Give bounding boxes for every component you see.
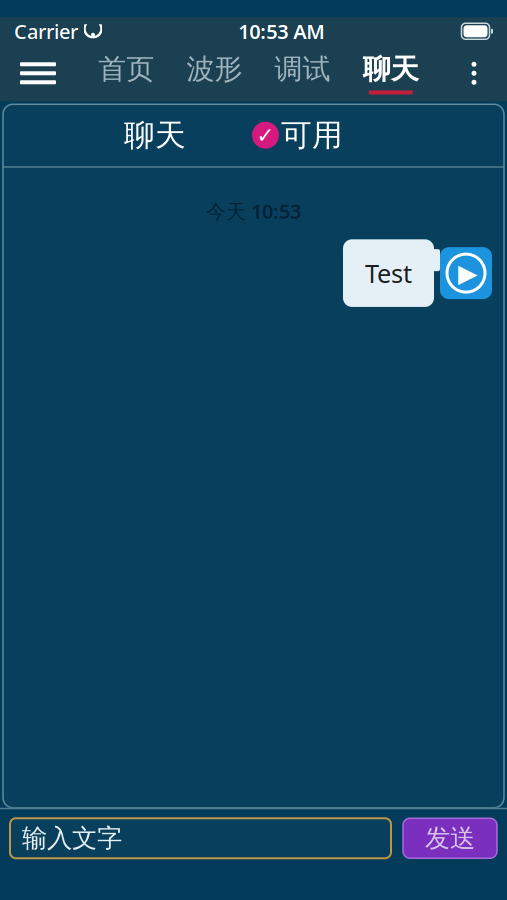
button[interactable]: 调试 <box>275 45 331 101</box>
staticText: ✓ <box>256 123 274 147</box>
button[interactable]: 输入文字 <box>10 818 391 858</box>
staticText: 聊天 <box>124 116 186 154</box>
staticText: 发送 <box>425 823 475 854</box>
button[interactable]: 首页 <box>98 45 154 101</box>
button[interactable]: 发送 <box>403 818 497 858</box>
button[interactable]: 波形 <box>186 45 242 101</box>
staticText: 今天 10:53 <box>206 198 301 224</box>
staticText: 波形 <box>186 52 242 86</box>
staticText: 输入文字 <box>22 823 122 854</box>
staticText: Carrier <box>14 18 78 45</box>
button[interactable]: 聊天 <box>363 45 419 101</box>
staticText: 调试 <box>275 52 331 86</box>
staticText: 聊天 <box>363 52 419 86</box>
button[interactable]: More options <box>451 45 497 101</box>
staticText: 可用 <box>281 116 343 154</box>
staticText: 10:53 AM <box>238 18 325 45</box>
button[interactable]: Menu <box>10 45 66 101</box>
staticText: ▶ <box>458 259 477 288</box>
staticText: 首页 <box>98 52 154 86</box>
staticText: Test <box>365 256 412 290</box>
